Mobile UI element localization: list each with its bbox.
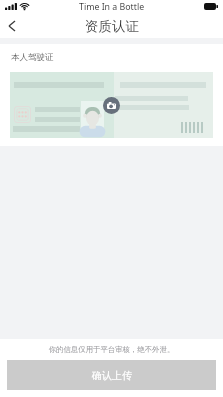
staticText: 确认上传: [92, 369, 132, 382]
staticText: Time In a Bottle: [79, 1, 145, 13]
button[interactable]: Upload driver license photo: [10, 72, 213, 138]
staticText: 资质认证: [85, 18, 139, 35]
staticText: 你的信息仅用于平台审核，绝不外泄。: [0, 345, 223, 354]
staticText: 本人驾驶证: [11, 52, 54, 63]
button[interactable]: 确认上传: [7, 360, 216, 390]
button[interactable]: Back: [0, 14, 24, 38]
button[interactable]: Take photo: [103, 97, 120, 114]
